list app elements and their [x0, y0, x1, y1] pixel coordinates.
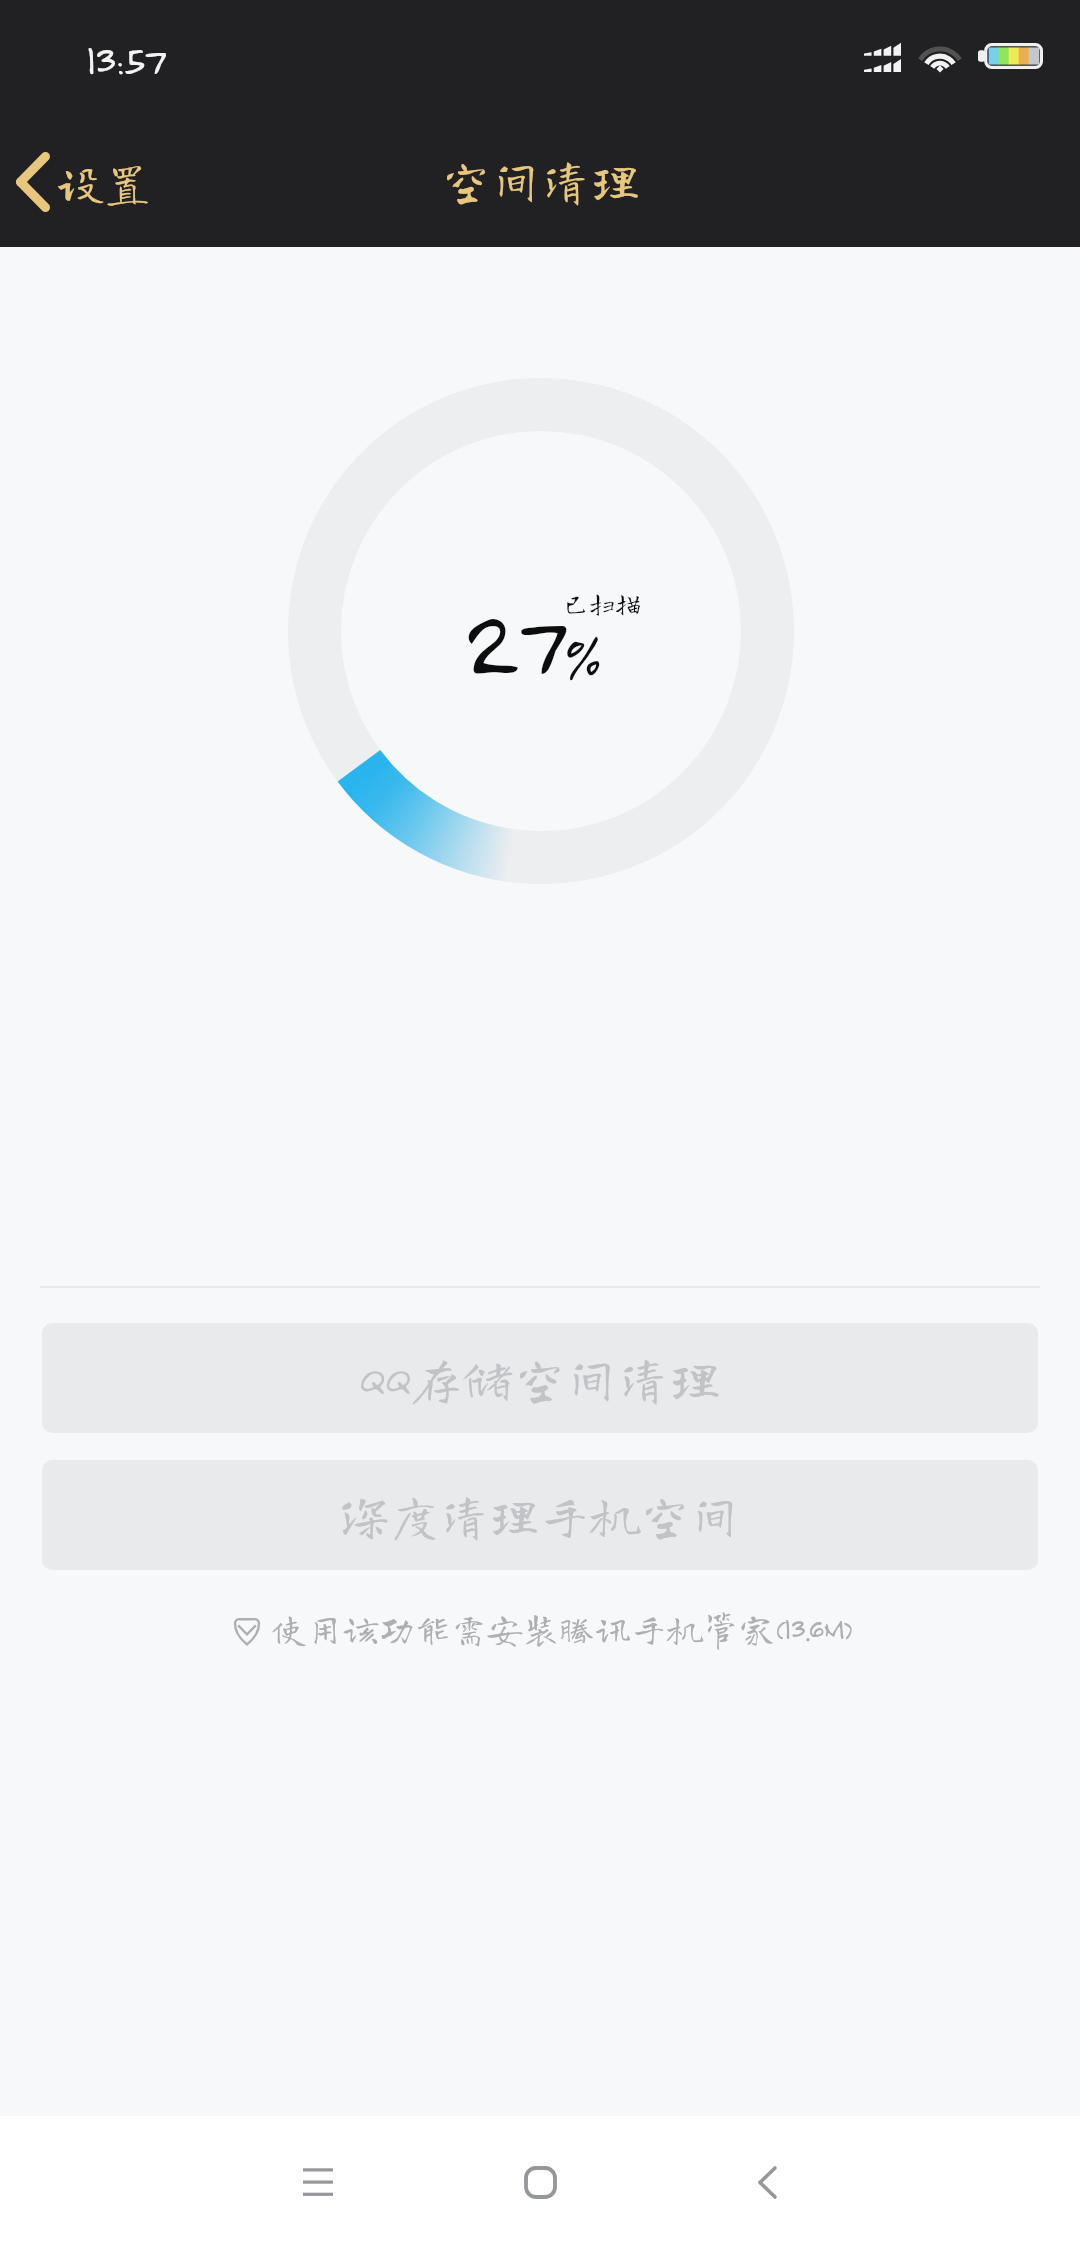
button[interactable]: 深度清理手机空间 — [42, 1460, 1038, 1570]
staticText: 设置 — [57, 159, 151, 206]
staticText: 空间清理 — [441, 155, 641, 205]
staticText: 已扫描 — [563, 590, 642, 616]
button[interactable]: QQ存储空间清理 — [42, 1323, 1038, 1433]
staticText: 深度清理手机空间 — [340, 1490, 740, 1540]
button[interactable]: 设置 — [0, 148, 167, 218]
staticText: QQ存储空间清理 — [358, 1352, 722, 1404]
staticText: % — [563, 619, 600, 695]
staticText: 13:57 — [86, 34, 164, 84]
staticText: 使用该功能需安装腾讯手机管家(13.6M) — [271, 1610, 852, 1646]
staticText: 27 — [463, 584, 563, 696]
button[interactable]: Home — [480, 2116, 600, 2248]
button[interactable]: Back — [707, 2116, 827, 2248]
button[interactable]: Recent apps — [258, 2116, 378, 2248]
